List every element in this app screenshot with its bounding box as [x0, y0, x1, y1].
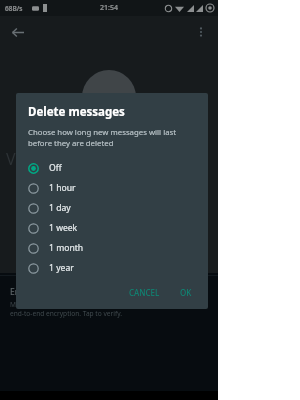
button[interactable]: More options — [190, 21, 212, 43]
staticText: end-to-end encryption. Tap to verify. — [10, 309, 123, 318]
staticText: before they are deleted — [28, 138, 114, 149]
button[interactable]: OK — [174, 282, 198, 303]
button[interactable]: 1 day — [28, 198, 198, 218]
staticText: Delete messages — [28, 104, 125, 120]
staticText: 1 day — [49, 202, 71, 214]
staticText: V — [6, 148, 16, 170]
button[interactable]: Encryption — [0, 276, 218, 328]
staticText: OK — [180, 287, 192, 298]
button[interactable]: Back — [6, 21, 28, 43]
staticText: Choose how long new messages will last — [28, 127, 177, 138]
staticText: 1 hour — [49, 182, 76, 194]
staticText: Off — [49, 162, 62, 174]
button[interactable]: 1 month — [28, 238, 198, 258]
staticText: CANCEL — [129, 287, 160, 298]
staticText: 1 year — [49, 262, 74, 274]
staticText: 1 week — [49, 222, 78, 234]
staticText: Messages to this chat and calls are secu… — [10, 300, 159, 309]
button[interactable]: 1 week — [28, 218, 198, 238]
button[interactable]: 1 year — [28, 258, 198, 278]
staticText: 68B/s — [5, 4, 23, 13]
button[interactable]: 1 hour — [28, 178, 198, 198]
button[interactable]: CANCEL — [123, 282, 166, 303]
staticText: 1 month — [49, 242, 84, 254]
staticText: 21:54 — [100, 3, 118, 13]
staticText: Encryption — [10, 286, 53, 298]
button[interactable]: Off — [28, 158, 198, 178]
